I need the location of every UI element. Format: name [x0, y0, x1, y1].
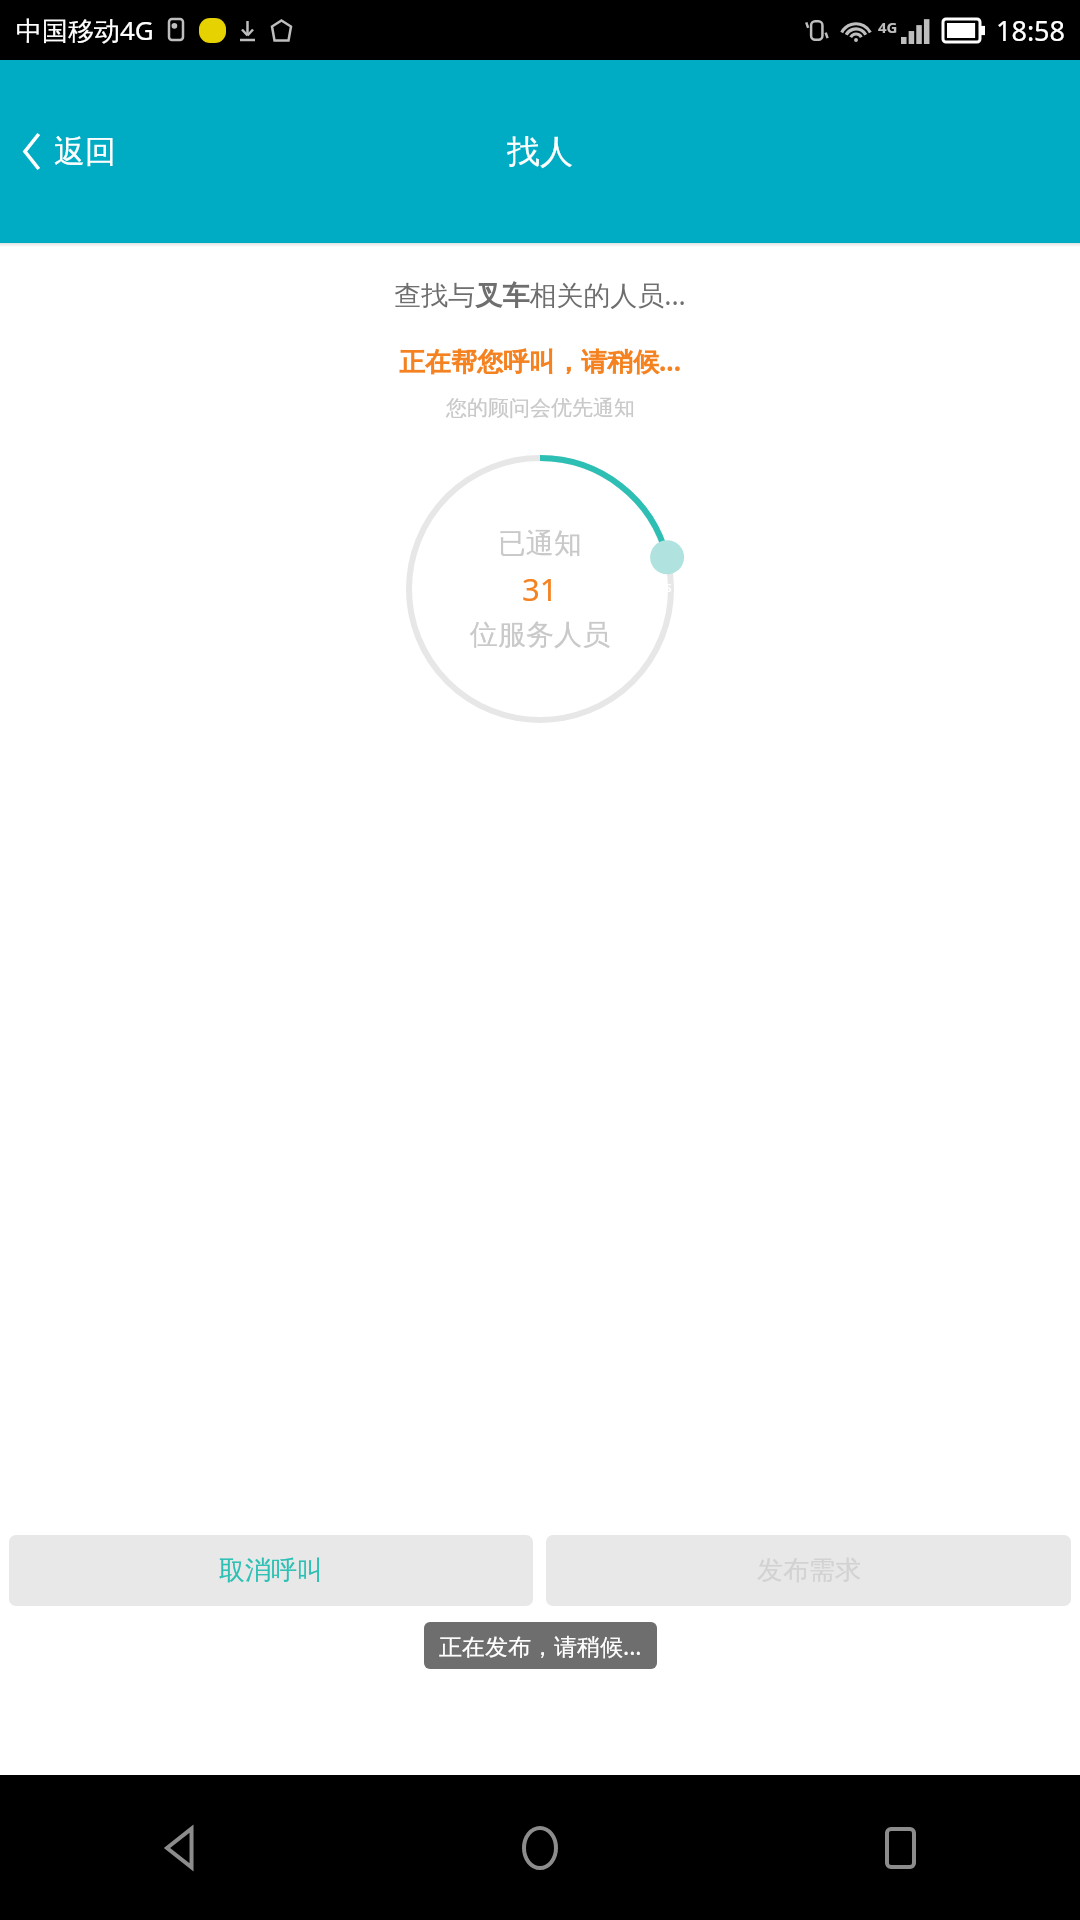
staticText: 4G — [878, 17, 898, 37]
staticText: 查找与叉车相关的人员... — [394, 276, 686, 313]
button[interactable]: Home — [360, 1775, 720, 1920]
button[interactable]: 发布需求 — [546, 1535, 1071, 1606]
button[interactable]: 取消呼叫 — [9, 1535, 533, 1606]
staticText: 中国移动4G — [16, 12, 154, 48]
staticText: 返回 — [54, 132, 116, 171]
staticText: 31 — [522, 568, 558, 610]
staticText: 位服务人员 — [470, 617, 610, 652]
staticText: 找人 — [507, 131, 573, 173]
button[interactable]: Back — [0, 1775, 360, 1920]
staticText: 取消呼叫 — [219, 1554, 323, 1587]
button[interactable]: Recents — [720, 1775, 1080, 1920]
staticText: 已通知 — [498, 526, 582, 561]
staticText: 您的顾问会优先通知 — [446, 395, 635, 421]
staticText: 发布需求 — [757, 1554, 861, 1587]
staticText: 正在发布，请稍候... — [439, 1630, 642, 1661]
staticText: 6s — [657, 577, 672, 596]
staticText: 正在帮您呼叫，请稍候... — [399, 343, 681, 379]
button[interactable]: 返回 — [0, 116, 138, 187]
staticText: 18:58 — [996, 12, 1066, 49]
